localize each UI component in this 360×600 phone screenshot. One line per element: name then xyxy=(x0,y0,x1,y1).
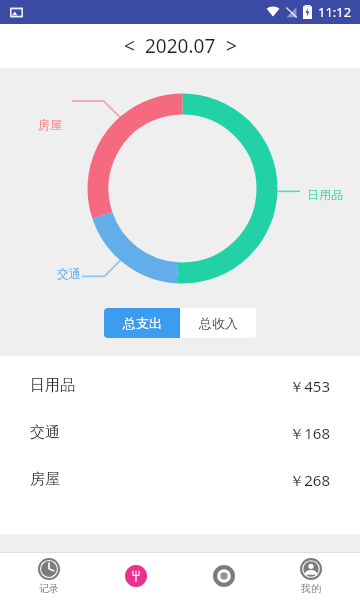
staticText: 我的 xyxy=(301,582,321,595)
button[interactable]: 日用品 xyxy=(0,362,360,409)
staticText: > xyxy=(226,33,237,59)
button[interactable]: Add food record xyxy=(98,552,174,600)
staticText: 2020.07 xyxy=(145,33,216,59)
staticText: 交通 xyxy=(30,423,60,442)
button[interactable]: 房屋 xyxy=(0,456,360,503)
button[interactable]: 记录 xyxy=(11,552,87,600)
staticText: 日用品 xyxy=(30,376,75,395)
staticText: 总收入 xyxy=(199,315,238,331)
staticText: < xyxy=(124,33,135,59)
staticText: 房屋 xyxy=(38,117,62,132)
staticText: 房屋 xyxy=(30,470,60,489)
button[interactable]: Statistics xyxy=(186,552,262,600)
staticText: 总支出 xyxy=(123,315,162,331)
button[interactable]: 我的 xyxy=(273,552,349,600)
staticText: ￥453 xyxy=(289,376,330,396)
staticText: 11:12 xyxy=(318,3,352,21)
staticText: 日用品 xyxy=(307,187,343,202)
staticText: ￥168 xyxy=(289,423,330,443)
button[interactable]: 总收入 xyxy=(180,308,256,338)
button[interactable]: Next month xyxy=(220,29,243,63)
staticText: 交通 xyxy=(57,266,81,281)
button[interactable]: 交通 xyxy=(0,409,360,456)
staticText: ￥268 xyxy=(289,470,330,490)
button[interactable]: 总支出 xyxy=(104,308,180,338)
staticText: 记录 xyxy=(39,582,59,595)
button[interactable]: Previous month xyxy=(118,29,141,63)
